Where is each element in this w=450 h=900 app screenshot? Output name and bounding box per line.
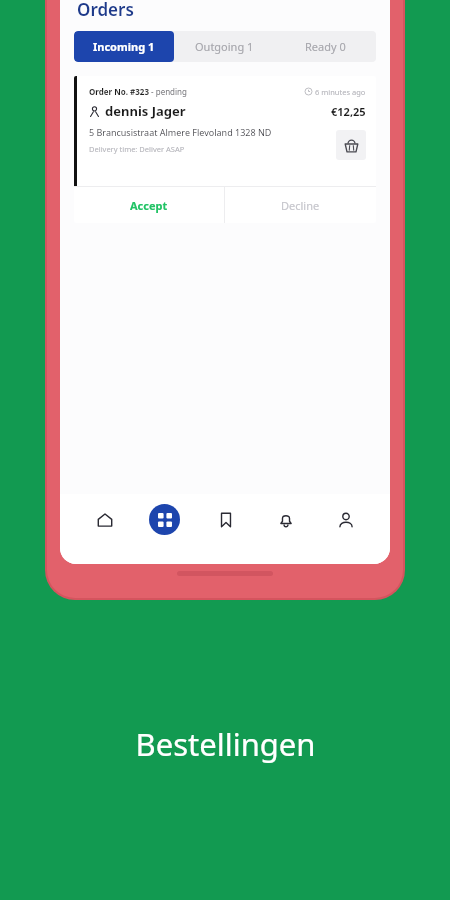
- button[interactable]: Profile: [330, 504, 361, 535]
- staticText: Orders: [77, 0, 134, 21]
- button[interactable]: Incoming 1: [74, 31, 174, 62]
- button[interactable]: Ready 0: [275, 31, 376, 62]
- button[interactable]: Accept: [74, 187, 224, 223]
- button[interactable]: Order items: [336, 130, 366, 160]
- button[interactable]: Order No. #323: [74, 76, 376, 223]
- staticText: 5 Brancusistraat Almere Flevoland 1328 N…: [89, 126, 272, 138]
- staticText: Bestellingen: [135, 723, 316, 765]
- staticText: - pending: [149, 86, 187, 97]
- button[interactable]: Notifications: [270, 504, 301, 535]
- staticText: Order No. #323: [89, 86, 149, 97]
- button[interactable]: Outgoing 1: [174, 31, 275, 62]
- staticText: €12,25: [331, 104, 366, 119]
- staticText: Incoming 1: [93, 39, 155, 54]
- button[interactable]: Home: [89, 504, 120, 535]
- button[interactable]: Orders: [149, 504, 180, 535]
- staticText: 6 minutes ago: [315, 87, 366, 97]
- staticText: Outgoing 1: [195, 39, 254, 54]
- staticText: Decline: [281, 198, 320, 213]
- staticText: Delivery time: Deliver ASAP: [89, 144, 185, 154]
- staticText: dennis Jager: [105, 102, 186, 120]
- button[interactable]: Decline: [225, 187, 376, 223]
- button[interactable]: Saved: [210, 504, 241, 535]
- staticText: Accept: [130, 198, 168, 213]
- staticText: Ready 0: [305, 39, 346, 54]
